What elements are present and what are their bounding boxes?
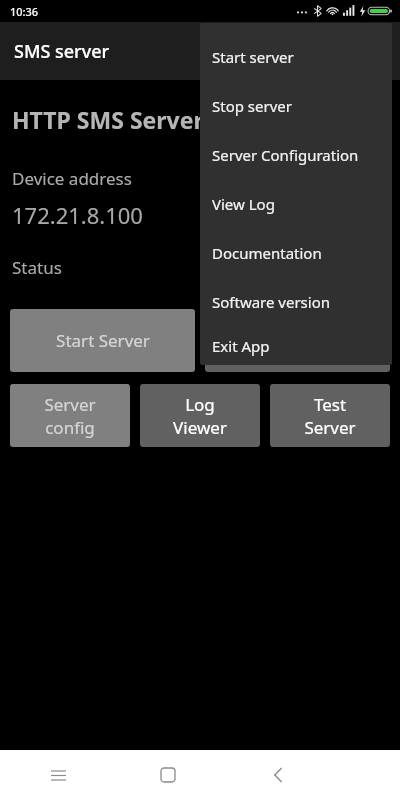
staticText: Device address [12, 167, 132, 190]
staticText: Software version [212, 292, 331, 312]
staticText: Server Configuration [212, 145, 359, 165]
staticText: Status [12, 256, 62, 279]
button[interactable]: Server Configuration [200, 130, 392, 179]
button[interactable]: Server config [10, 384, 130, 447]
staticText: Start Server [56, 329, 150, 352]
staticText: 172.21.8.100 [12, 200, 143, 230]
staticText: Server config [44, 393, 96, 439]
staticText: 10:36 [10, 4, 39, 19]
button[interactable]: View Log [200, 179, 392, 228]
button[interactable]: Back [255, 752, 301, 798]
staticText: Start server [212, 47, 294, 67]
staticText: Stop server [212, 96, 292, 116]
button[interactable]: Test Server [270, 384, 390, 447]
button[interactable]: Stop server [200, 81, 392, 130]
button[interactable]: Start server [200, 32, 392, 81]
staticText: Stop server [252, 329, 343, 352]
button[interactable]: Home [145, 752, 191, 798]
staticText: View Log [212, 194, 275, 214]
button[interactable]: Log Viewer [140, 384, 260, 447]
staticText: Documentation [212, 243, 322, 263]
button[interactable]: Start Server [10, 309, 195, 372]
staticText: Exit App [212, 336, 270, 356]
button[interactable]: Documentation [200, 228, 392, 277]
staticText: SMS server [14, 39, 110, 64]
staticText: HTTP SMS Server [12, 104, 204, 135]
staticText: Log Viewer [173, 393, 227, 439]
button[interactable]: Exit App [200, 326, 392, 365]
button[interactable]: Software version [200, 277, 392, 326]
staticText: Test Server [304, 393, 356, 439]
button[interactable]: Recents [35, 752, 81, 798]
button[interactable]: Stop server [205, 309, 390, 372]
